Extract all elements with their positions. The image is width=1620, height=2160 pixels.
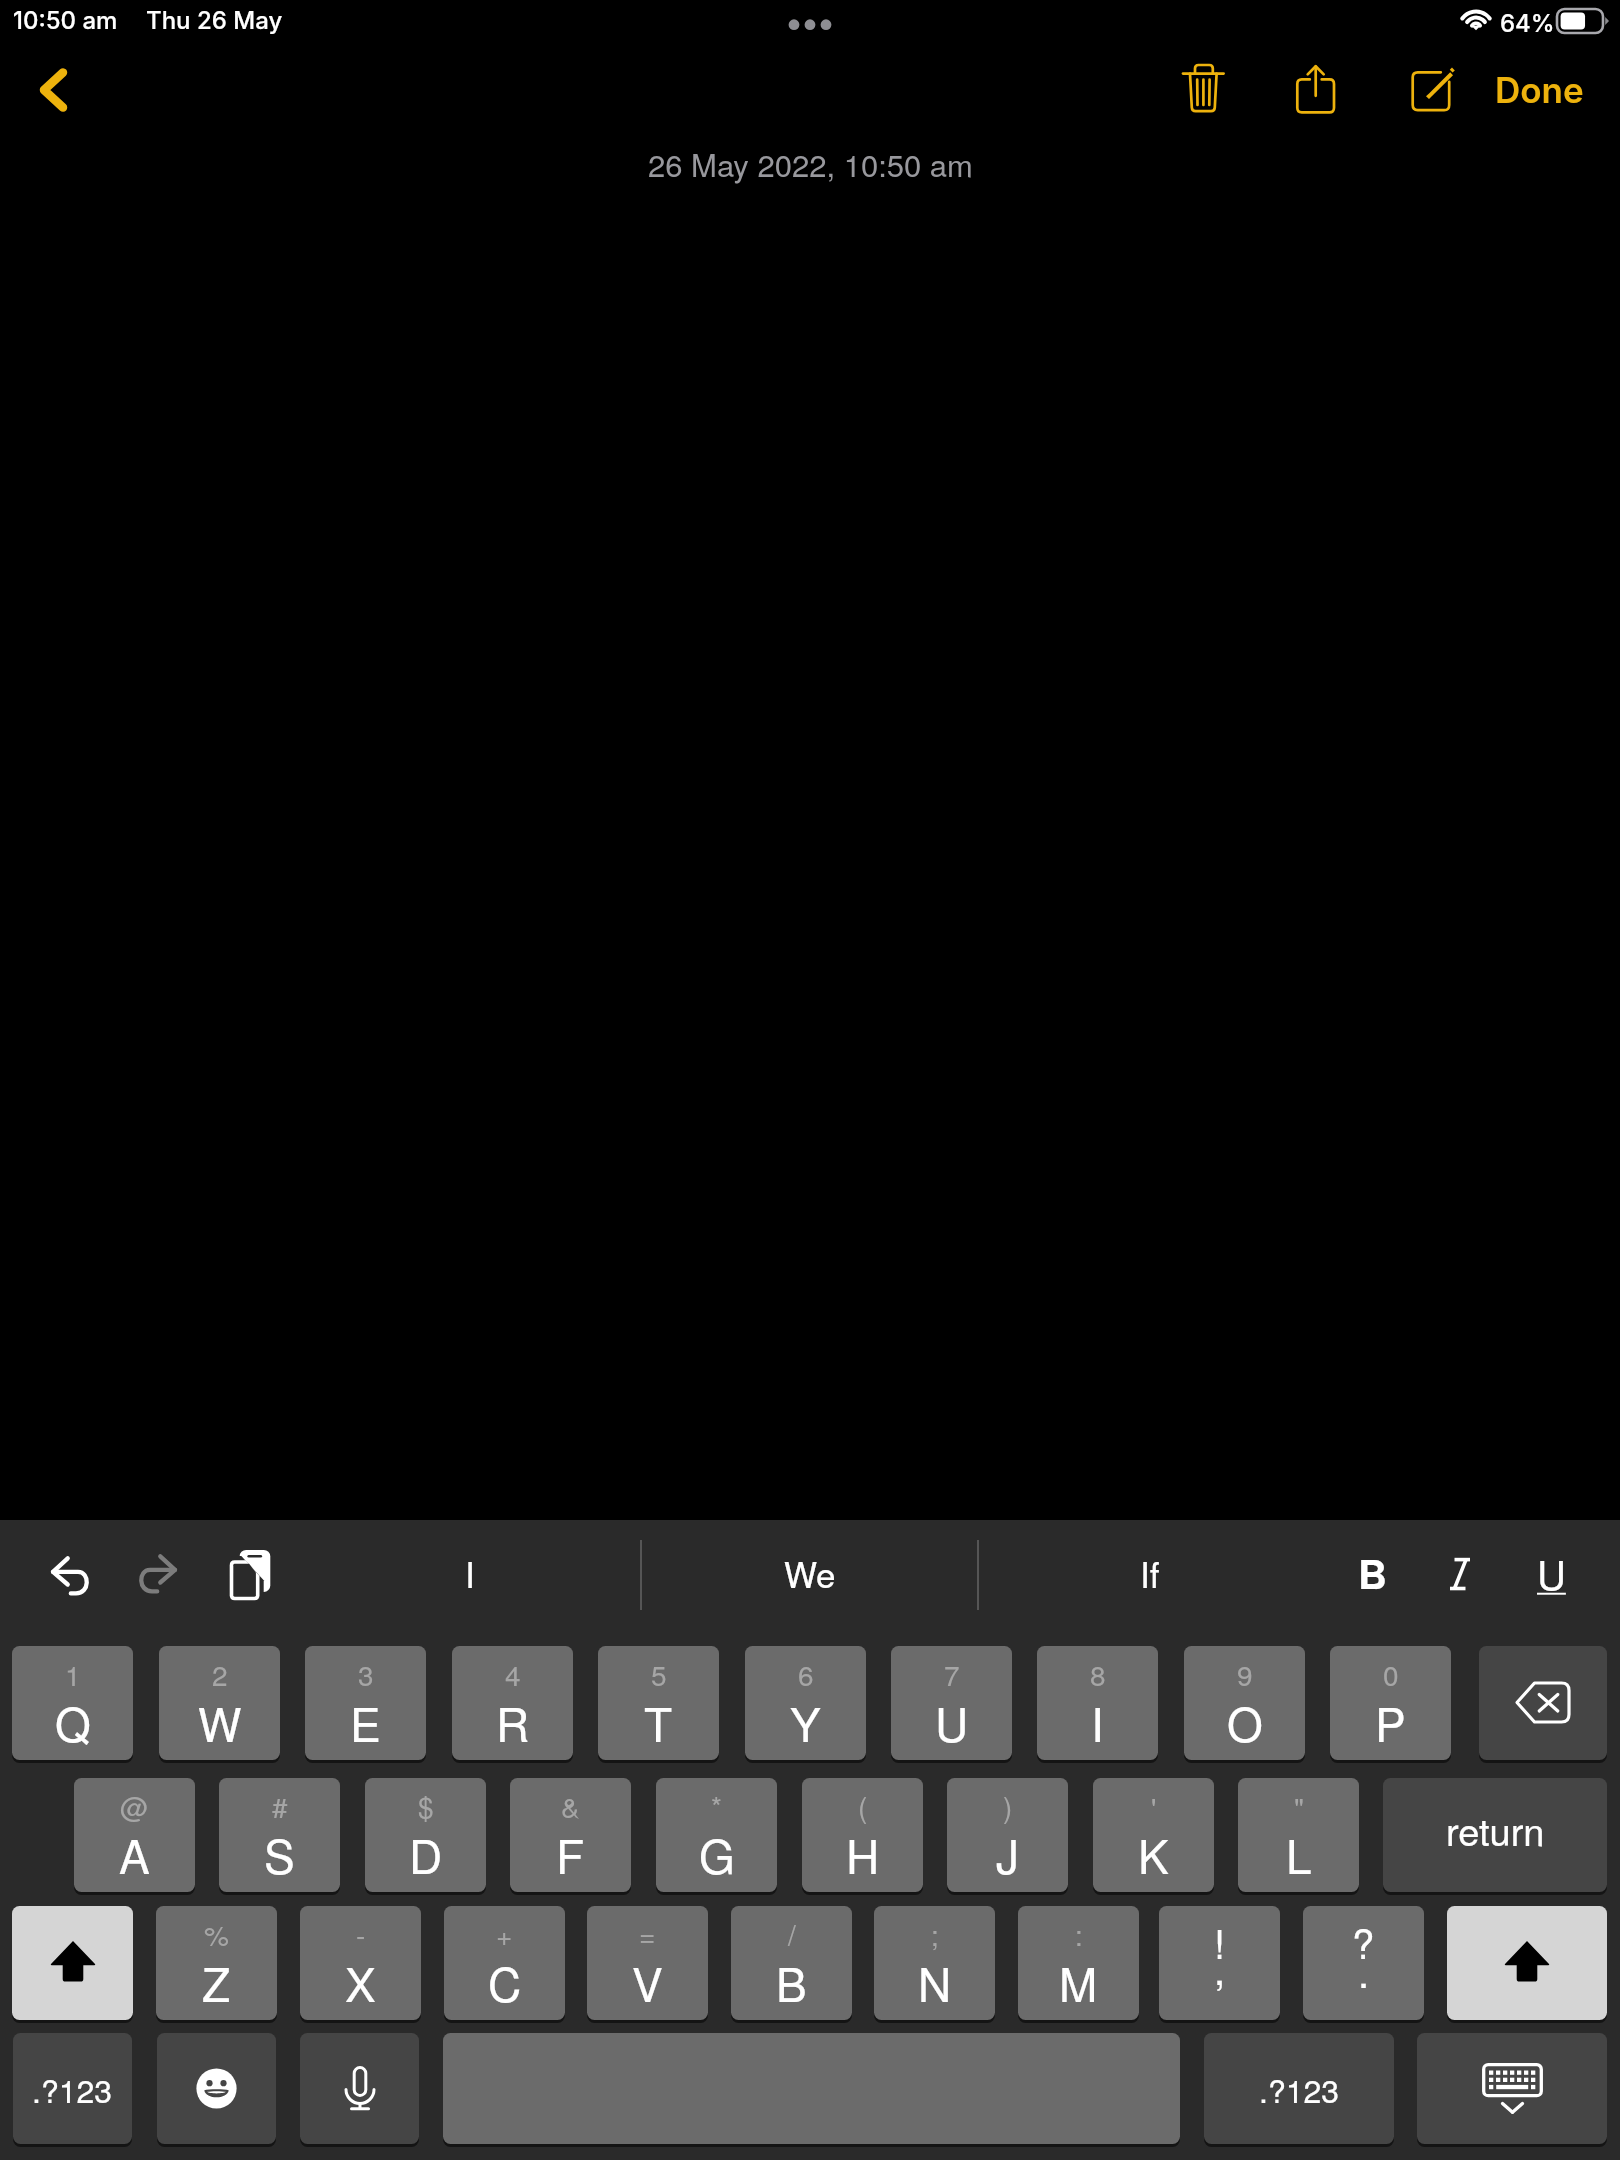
button[interactable]: Delete [1170,55,1240,125]
button[interactable]: U [1509,1540,1593,1604]
staticText: N [918,1949,952,2015]
staticText: We [784,1548,836,1598]
staticText: M [1059,1949,1098,2015]
staticText: 26 May 2022, 10:50 am [648,141,973,185]
button[interactable]: Shift [12,1906,133,2020]
staticText: If [1140,1548,1160,1598]
staticText: 5 [651,1654,667,1694]
button[interactable]: " [1238,1778,1359,1892]
staticText: X [345,1949,376,2015]
button[interactable]: Hide keyboard [1417,2033,1607,2144]
staticText: $ [418,1786,434,1826]
staticText: A [119,1821,150,1887]
staticText: , [1214,1939,1226,1996]
staticText: V [632,1949,663,2015]
staticText: + [496,1914,513,1954]
staticText: D [409,1821,443,1887]
staticText: ; [931,1914,939,1954]
button[interactable]: Emoji [157,2033,276,2144]
button[interactable]: % [156,1906,277,2020]
staticText: ( [858,1786,868,1826]
button[interactable]: B [1330,1540,1414,1604]
button[interactable]: ; [874,1906,995,2020]
staticText: 0 [1383,1654,1399,1694]
staticText: @ [120,1786,149,1826]
button[interactable]: - [300,1906,421,2020]
staticText: W [198,1689,242,1755]
button[interactable]: ( [802,1778,923,1892]
button[interactable]: .?123 [13,2033,132,2144]
staticText: H [846,1821,880,1887]
staticText: 64% [1500,9,1555,38]
button[interactable]: ) [947,1778,1068,1892]
staticText: Z [202,1949,231,2015]
button[interactable]: @ [74,1778,195,1892]
button[interactable]: Compose [1395,55,1465,125]
staticText: - [356,1914,366,1954]
button[interactable]: ! [1159,1906,1280,2020]
button[interactable]: : [1018,1906,1139,2020]
button[interactable]: 7 [891,1646,1012,1760]
button[interactable]: Backspace [1479,1646,1607,1760]
button[interactable]: .?123 [1204,2033,1394,2144]
staticText: B [776,1949,807,2015]
staticText: * [711,1786,722,1826]
button[interactable]: 4 [452,1646,573,1760]
staticText: .?123 [1259,2066,1340,2112]
staticText: L [1286,1821,1312,1887]
button[interactable]: Shift [1447,1906,1607,2020]
button[interactable]: $ [365,1778,486,1892]
button[interactable]: Share [1280,55,1350,125]
button[interactable]: 3 [305,1646,426,1760]
button[interactable]: Paste [215,1540,285,1615]
button[interactable]: Dictate [300,2033,419,2144]
staticText: Done [1495,69,1584,111]
button[interactable]: / [731,1906,852,2020]
staticText: 1 [65,1654,81,1694]
staticText: Y [790,1689,821,1755]
button[interactable]: = [587,1906,708,2020]
staticText: ? [1352,1913,1375,1970]
button[interactable]: 0 [1330,1646,1451,1760]
staticText: 3 [358,1654,374,1694]
button[interactable]: 6 [745,1646,866,1760]
button[interactable]: We [680,1538,940,1608]
staticText: U [935,1689,969,1755]
button[interactable]: 1 [12,1646,133,1760]
button[interactable]: I [340,1538,600,1608]
button[interactable]: return [1383,1778,1607,1892]
button[interactable]: Back [10,50,90,130]
button[interactable]: 8 [1037,1646,1158,1760]
button[interactable]: ? [1303,1906,1424,2020]
staticText: = [639,1914,656,1954]
staticText: U [1537,1544,1566,1601]
button[interactable]: Redo [126,1540,196,1610]
staticText: O [1227,1689,1263,1755]
button[interactable]: Italic [1418,1540,1502,1604]
staticText: Thu 26 May [146,6,283,35]
button[interactable]: 5 [598,1646,719,1760]
staticText: 4 [505,1654,521,1694]
staticText: C [488,1949,522,2015]
staticText: Q [55,1689,91,1755]
staticText: P [1375,1689,1406,1755]
staticText: ) [1003,1786,1013,1826]
button[interactable]: ' [1093,1778,1214,1892]
button[interactable]: Done [1484,53,1594,127]
button[interactable]: * [656,1778,777,1892]
button[interactable]: 9 [1184,1646,1305,1760]
staticText: .?123 [32,2066,113,2112]
staticText: F [556,1821,585,1887]
button[interactable]: + [444,1906,565,2020]
staticText: I [465,1548,475,1598]
button[interactable]: 2 [159,1646,280,1760]
staticText: E [350,1689,381,1755]
button[interactable]: Undo [32,1542,102,1612]
staticText: % [204,1914,229,1954]
button[interactable]: # [219,1778,340,1892]
staticText: ! [1214,1913,1226,1970]
button[interactable]: If [1020,1538,1280,1608]
button[interactable]: & [510,1778,631,1892]
staticText: : [1075,1914,1083,1954]
